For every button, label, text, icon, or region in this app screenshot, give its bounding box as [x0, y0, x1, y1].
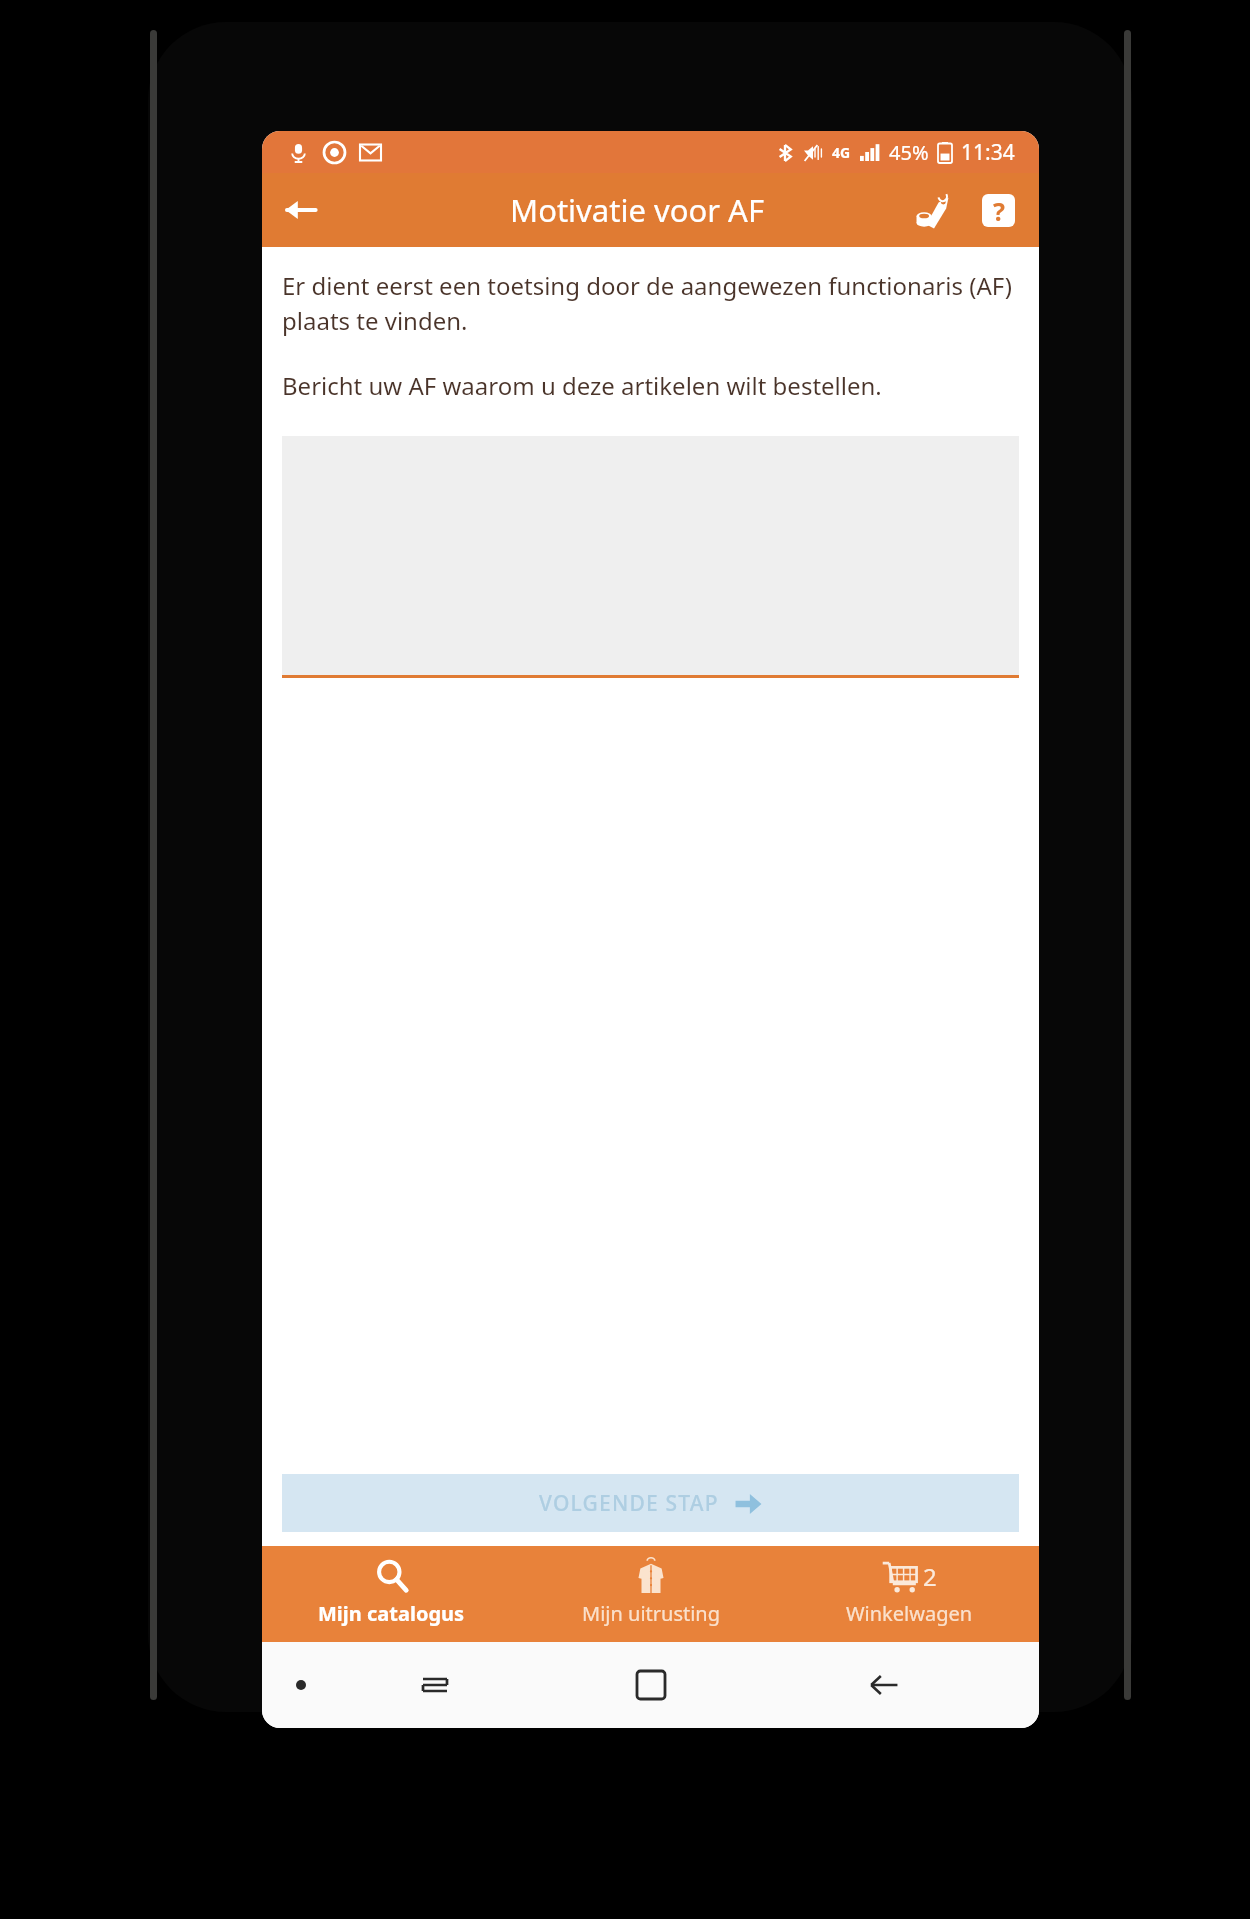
button[interactable]: VOLGENDE STAP [282, 1474, 1019, 1532]
staticText: 4G [832, 143, 851, 162]
button[interactable]: Home [626, 1660, 676, 1710]
button[interactable]: Mijn catalogus [262, 1546, 521, 1642]
staticText: ? [993, 194, 1005, 227]
button[interactable]: 2 [780, 1546, 1039, 1642]
button[interactable]: Back [272, 181, 330, 239]
button[interactable]: Back [859, 1660, 909, 1710]
button[interactable]: Mijn uitrusting [521, 1546, 780, 1642]
staticText: Mijn catalogus [318, 1600, 465, 1627]
button[interactable]: Stempel [905, 181, 963, 239]
button[interactable]: Recents [410, 1660, 460, 1710]
staticText: 11:34 [961, 138, 1015, 167]
staticText: Bericht uw AF waarom u deze artikelen wi… [282, 369, 882, 402]
staticText: 45% [889, 139, 929, 166]
staticText: Winkelwagen [846, 1600, 973, 1627]
button[interactable] [282, 436, 1019, 678]
staticText: Motivatie voor AF [510, 189, 764, 231]
staticText: Mijn uitrusting [582, 1600, 720, 1627]
button[interactable]: Help [969, 181, 1027, 239]
staticText: VOLGENDE STAP [539, 1489, 719, 1518]
staticText: 2 [923, 1560, 937, 1593]
staticText: Er dient eerst een toetsing door de aang… [282, 269, 1019, 337]
